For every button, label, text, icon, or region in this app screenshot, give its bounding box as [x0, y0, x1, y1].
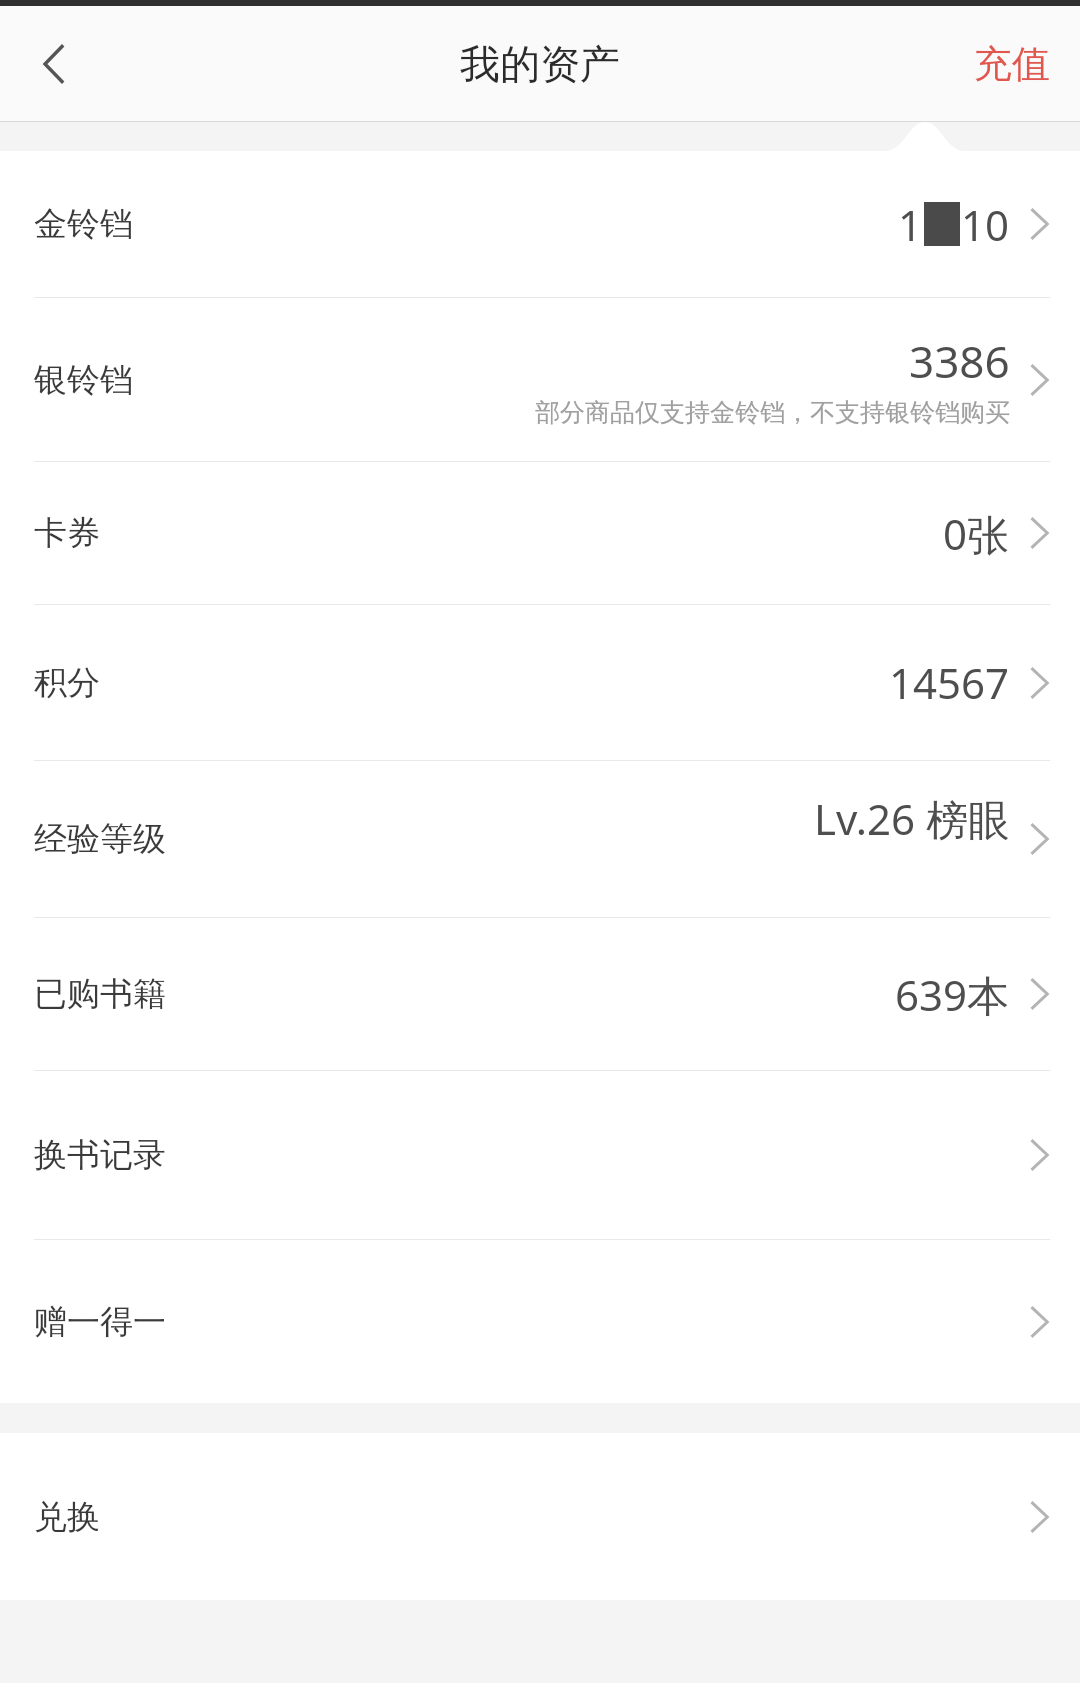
button[interactable]: 已购书籍 [0, 918, 1080, 1070]
staticText: 充值 [974, 40, 1050, 88]
staticText: 我的资产 [460, 39, 620, 89]
staticText: 银铃铛 [34, 359, 133, 401]
staticText: 3386 [909, 331, 1010, 391]
staticText: 已购书籍 [34, 973, 166, 1015]
staticText: Lv.26 榜眼 [814, 790, 1010, 847]
button[interactable]: 换书记录 [0, 1071, 1080, 1239]
button[interactable]: 经验等级 [0, 761, 1080, 917]
staticText: 0张 [943, 505, 1010, 562]
staticText: 部分商品仅支持金铃铛，不支持银铃铛购买 [535, 397, 1010, 428]
staticText: 兑换 [34, 1496, 100, 1538]
staticText: 1 [898, 196, 923, 253]
staticText: 14567 [889, 654, 1010, 711]
staticText: 639本 [895, 966, 1010, 1023]
button[interactable]: 金铃铛 [0, 151, 1080, 297]
button[interactable]: Back [0, 6, 110, 121]
button[interactable]: 卡券 [0, 462, 1080, 604]
staticText: 换书记录 [34, 1134, 166, 1176]
staticText: 积分 [34, 662, 100, 704]
button[interactable]: 充值 [944, 6, 1080, 121]
staticText: 10 [961, 196, 1010, 253]
staticText: 卡券 [34, 512, 100, 554]
button[interactable]: 兑换 [0, 1433, 1080, 1600]
button[interactable]: 积分 [0, 605, 1080, 760]
staticText: 金铃铛 [34, 203, 133, 245]
button[interactable]: 银铃铛 [0, 298, 1080, 461]
staticText: 经验等级 [34, 818, 166, 860]
button[interactable]: 赠一得一 [0, 1240, 1080, 1403]
staticText: 赠一得一 [34, 1301, 166, 1343]
